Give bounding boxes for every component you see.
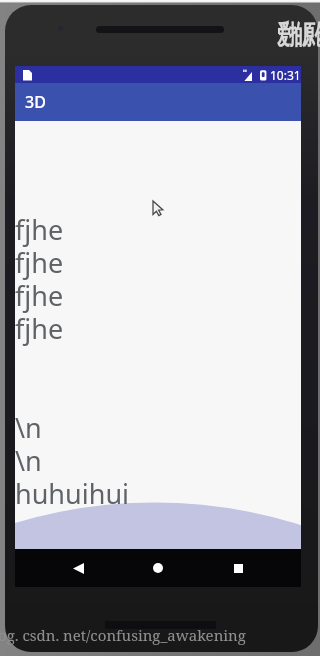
staticText: 3D — [25, 91, 46, 113]
button[interactable]: Home — [141, 551, 175, 585]
button[interactable]: Back — [61, 551, 95, 585]
staticText: 10:31 — [270, 67, 301, 83]
staticText: og. csdn. net/confusing_awakening — [0, 625, 246, 645]
button[interactable]: Recent apps — [221, 551, 255, 585]
staticText: 爱拍原创 — [277, 18, 320, 51]
button[interactable]: 3D — [15, 83, 301, 121]
staticText: fjhe fjhe fjhe fjhe \n \n huhuihui — [15, 211, 130, 512]
